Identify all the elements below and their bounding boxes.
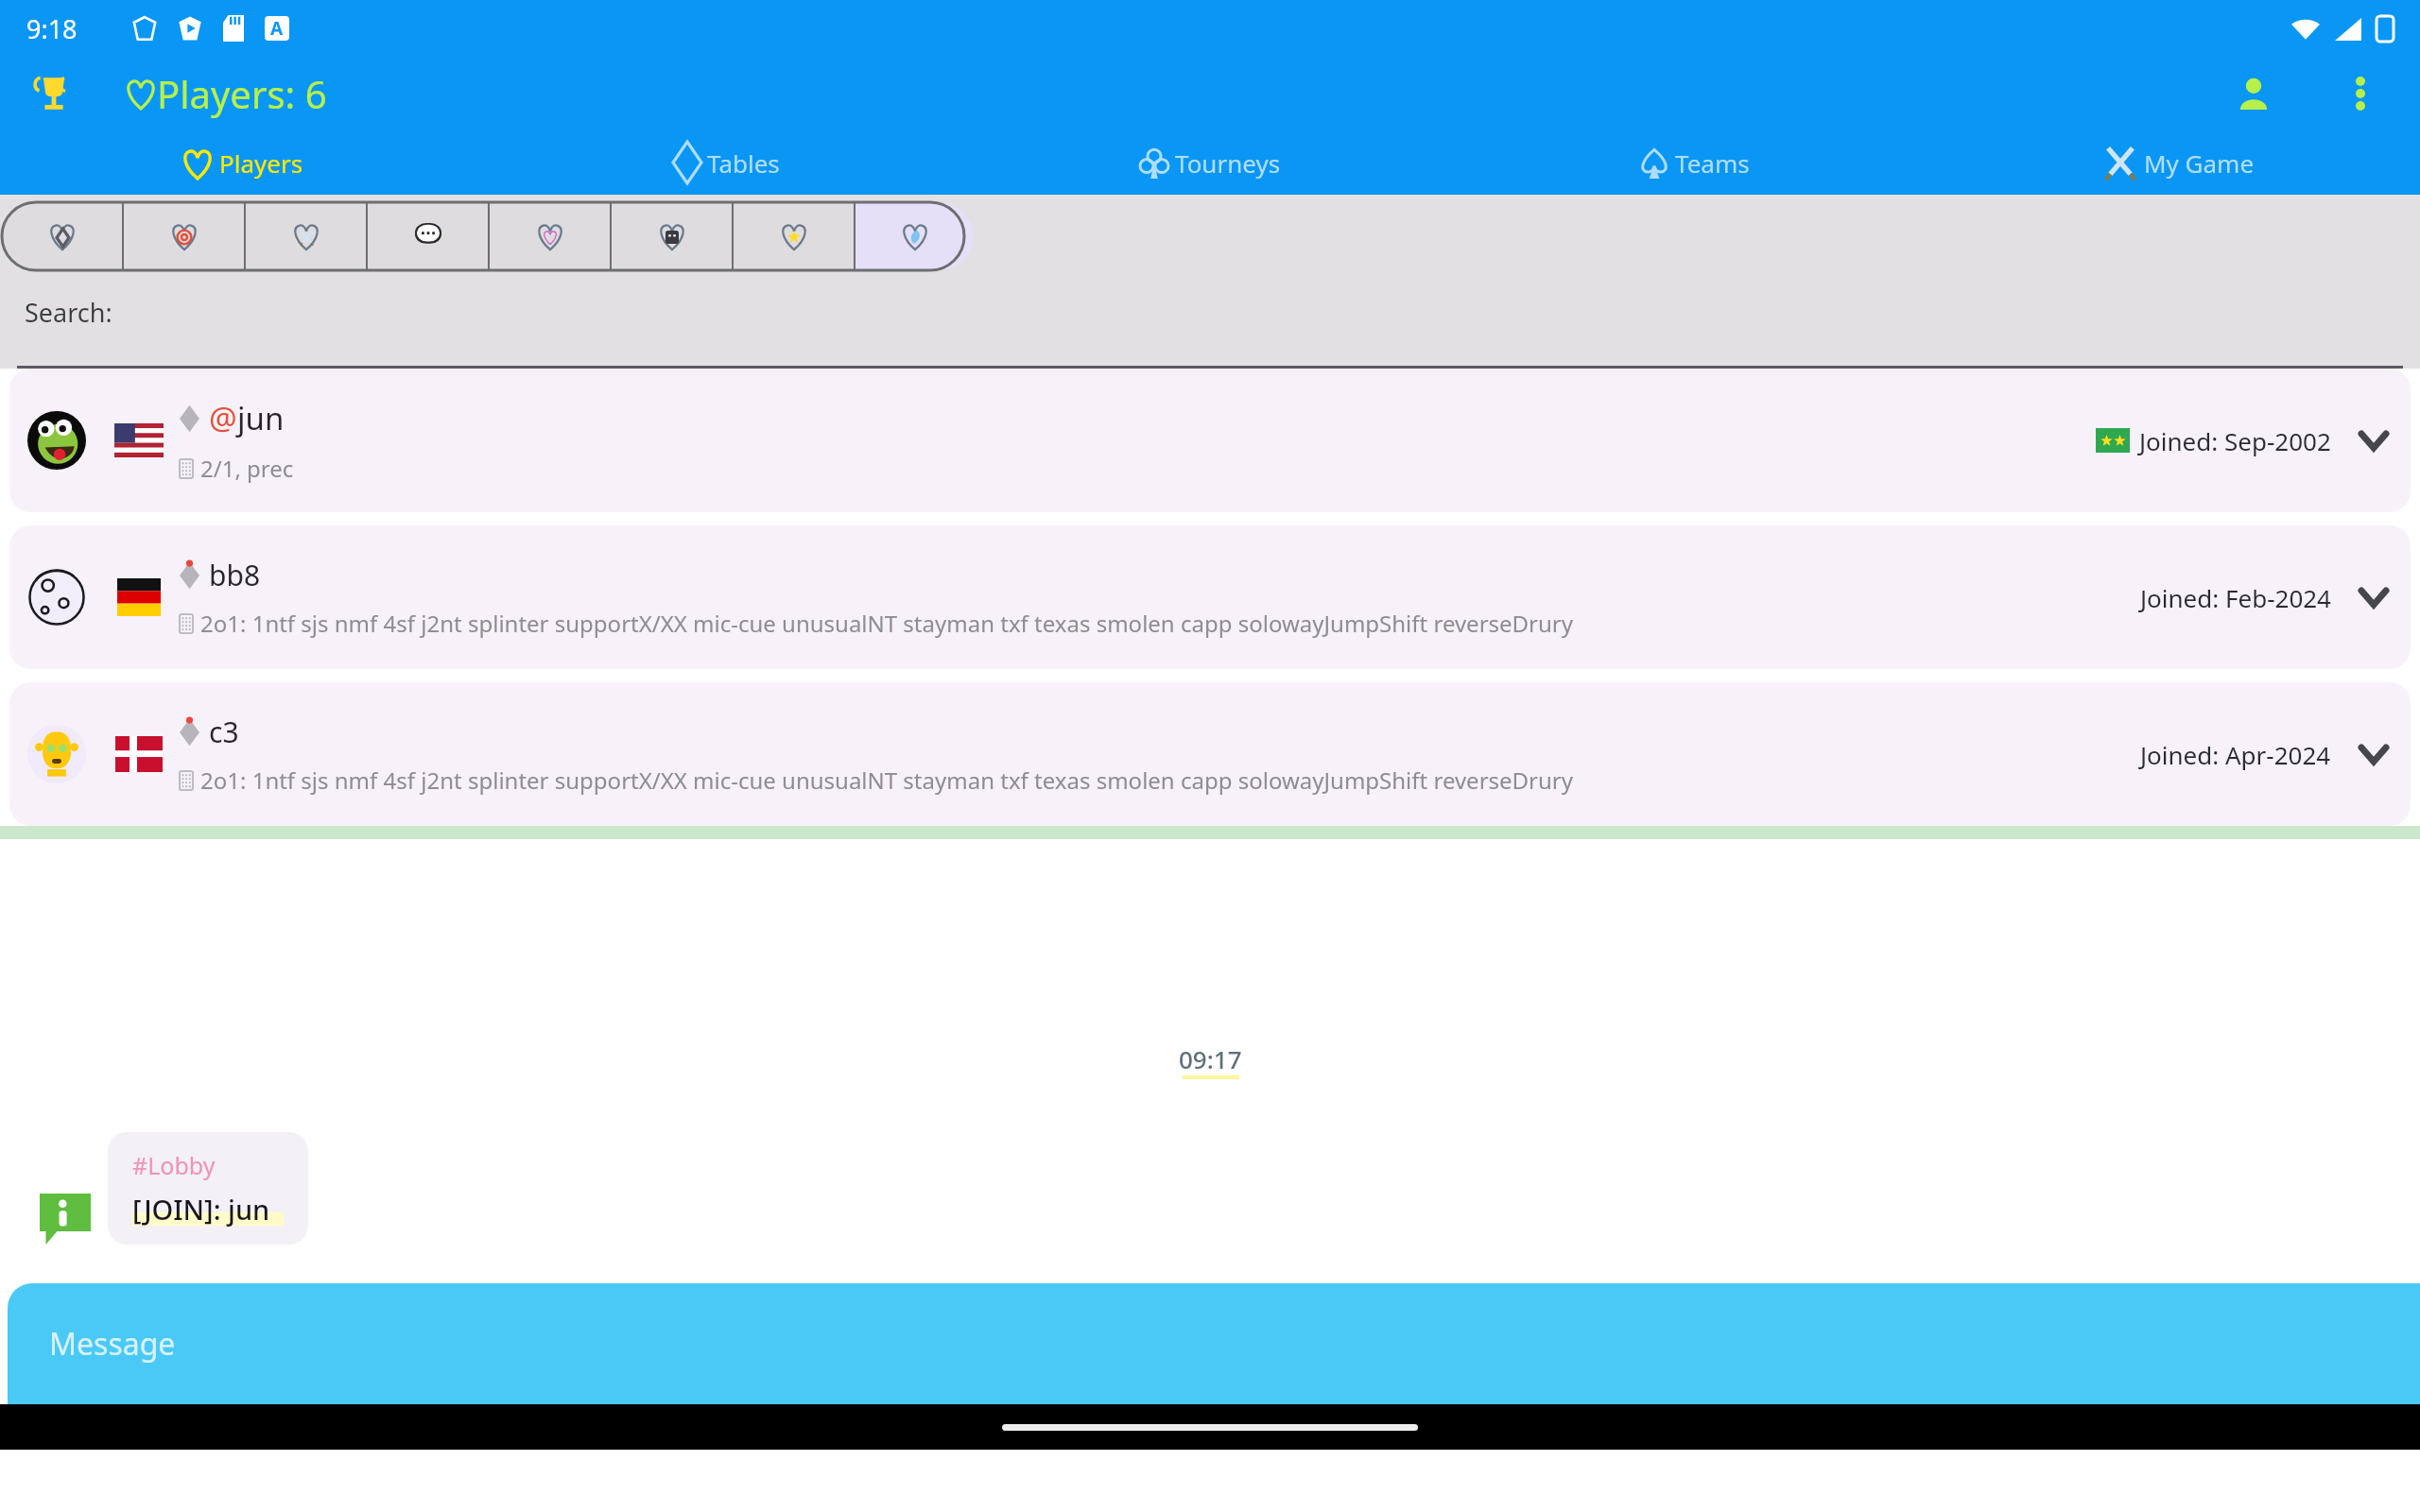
button[interactable]: Filter robot: [612, 202, 732, 270]
staticText: 09:17: [1179, 1042, 1242, 1075]
button[interactable]: Tables: [484, 130, 968, 195]
staticText: Players: [219, 146, 303, 180]
button[interactable]: bb8: [9, 525, 2411, 669]
staticText: #Lobby: [132, 1149, 216, 1181]
button[interactable]: Filter at: [124, 202, 244, 270]
button[interactable]: @: [9, 369, 2411, 512]
staticText: c3: [209, 713, 239, 751]
staticText: Joined: Apr-2024: [2140, 738, 2331, 771]
staticText: 9:18: [26, 11, 78, 46]
button[interactable]: Players: [0, 130, 484, 195]
staticText: My Game: [2144, 146, 2255, 180]
button[interactable]: Filter selected: [856, 202, 974, 270]
button[interactable]: Filter diamond: [2, 202, 122, 270]
staticText: bb8: [209, 556, 261, 594]
button[interactable]: Filter swords: [246, 202, 366, 270]
button[interactable]: Teams: [1452, 130, 1936, 195]
button[interactable]: More options: [2333, 66, 2388, 121]
staticText: A: [270, 16, 284, 41]
button[interactable]: Expand: [2352, 419, 2395, 462]
staticText: Teams: [1675, 146, 1750, 180]
button[interactable]: #Lobby: [132, 1149, 284, 1228]
staticText: @: [209, 397, 237, 439]
button[interactable]: c3: [9, 682, 2411, 826]
staticText: Joined: Sep-2002: [2139, 424, 2331, 457]
staticText: jun: [237, 397, 285, 439]
staticText: 2o1: 1ntf sjs nmf 4sf j2nt splinter supp…: [200, 608, 1574, 639]
staticText: 2/1, prec: [200, 453, 294, 484]
button[interactable]: Filter chat: [368, 202, 488, 270]
staticText: 2o1: 1ntf sjs nmf 4sf j2nt splinter supp…: [200, 765, 1574, 796]
staticText: [JOIN]: jun: [132, 1191, 270, 1228]
button[interactable]: Expand: [2352, 576, 2395, 619]
staticText: Players: 6: [157, 68, 327, 119]
staticText: Joined: Feb-2024: [2140, 581, 2331, 614]
staticText: Search:: [25, 295, 112, 330]
staticText: Tourneys: [1175, 146, 1281, 180]
button[interactable]: Trophy: [28, 68, 79, 119]
staticText: Message: [49, 1323, 176, 1365]
button[interactable]: Account: [2223, 63, 2284, 124]
button[interactable]: Expand: [2352, 732, 2395, 776]
button[interactable]: My Game: [1936, 130, 2420, 195]
button[interactable]: Message: [8, 1283, 2420, 1404]
button[interactable]: Tourneys: [968, 130, 1452, 195]
button[interactable]: Filter star: [734, 202, 854, 270]
button[interactable]: Filter pink: [490, 202, 610, 270]
staticText: Tables: [707, 146, 780, 180]
